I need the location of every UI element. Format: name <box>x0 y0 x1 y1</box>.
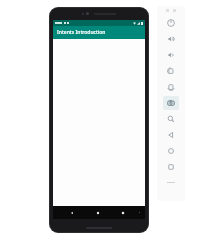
button[interactable]: Intents Introduction <box>53 26 145 39</box>
button[interactable]: Back <box>163 128 179 142</box>
button[interactable]: Recent apps <box>110 206 135 219</box>
button[interactable]: Volume up <box>163 32 179 46</box>
button[interactable]: Rotate right <box>163 80 179 94</box>
button[interactable]: Power <box>163 16 179 30</box>
button[interactable]: Back <box>59 206 85 219</box>
button[interactable]: Home <box>85 206 110 219</box>
button[interactable]: Zoom <box>163 112 179 126</box>
staticText: Intents Introduction <box>57 29 106 36</box>
button[interactable]: Screenshot <box>163 96 179 110</box>
button[interactable]: Rotate left <box>163 64 179 78</box>
button[interactable]: Overview <box>163 160 179 174</box>
button[interactable]: Volume down <box>163 48 179 62</box>
button[interactable]: Home <box>163 144 179 158</box>
button[interactable]: More <box>157 175 185 189</box>
button[interactable]: Menu <box>135 212 143 213</box>
